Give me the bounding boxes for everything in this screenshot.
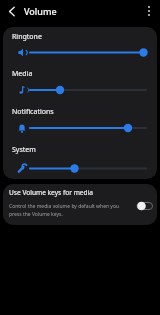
- button[interactable]: [2, 3, 20, 21]
- staticText: System: [12, 145, 36, 155]
- button[interactable]: [3, 120, 157, 137]
- staticText: Media: [12, 69, 33, 79]
- button[interactable]: [3, 82, 157, 99]
- button[interactable]: [3, 45, 157, 62]
- button[interactable]: [134, 197, 157, 215]
- button[interactable]: [3, 160, 157, 177]
- button[interactable]: Use Volume keys for media: [3, 184, 157, 225]
- staticText: Notifications: [12, 107, 54, 117]
- staticText: Use Volume keys for media: [9, 188, 93, 197]
- staticText: Ringtone: [12, 32, 42, 42]
- button[interactable]: [142, 3, 156, 19]
- staticText: Control the media volume by default when…: [9, 203, 149, 217]
- staticText: Volume: [24, 5, 57, 17]
